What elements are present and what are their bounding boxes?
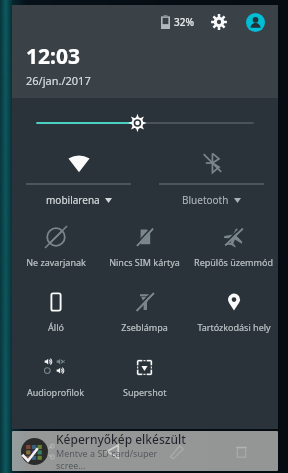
button[interactable]: Ne zavarjanak [12,225,100,268]
button[interactable]: Képernyőkép elkészült [12,431,278,471]
button[interactable]: Supershot [100,355,189,398]
staticText: Ne zavarjanak [26,256,86,268]
staticText: Mentve a SD card/super scree… [56,447,188,471]
button[interactable]: Delete [224,434,258,468]
button[interactable]: Tartózkodási hely [189,290,278,333]
staticText: Supershot [123,386,167,398]
staticText: Bluetooth [182,193,229,207]
button[interactable]: Nincs SIM kártya [100,225,189,268]
button[interactable]: Álló [12,290,100,333]
button[interactable]: Bluetooth [145,150,278,207]
button[interactable]: Edit [159,434,193,468]
staticText: Képernyőkép elkészült [56,431,186,447]
button[interactable]: Back [95,434,129,468]
button[interactable]: Brightness [12,112,278,134]
staticText: Nincs SIM kártya [109,256,180,268]
staticText: Tartózkodási hely [197,321,271,333]
button[interactable]: Settings [208,11,230,33]
staticText: 12:03 [26,42,80,71]
staticText: mobilarena [46,193,100,207]
staticText: 26/jan./2017 [26,73,91,88]
staticText: Audioprofilok [27,386,85,398]
button[interactable]: Repülős üzemmód [189,225,278,268]
button[interactable]: mobilarena [12,150,145,207]
button[interactable]: Zseblámpa [100,290,189,333]
button[interactable]: User profile [244,11,266,33]
staticText: Zseblámpa [121,321,168,333]
staticText: Repülős üzemmód [194,256,273,268]
staticText: Álló [48,321,64,333]
button[interactable]: Share [30,434,64,468]
button[interactable]: Audioprofilok [12,355,100,398]
staticText: 32% [174,15,194,29]
